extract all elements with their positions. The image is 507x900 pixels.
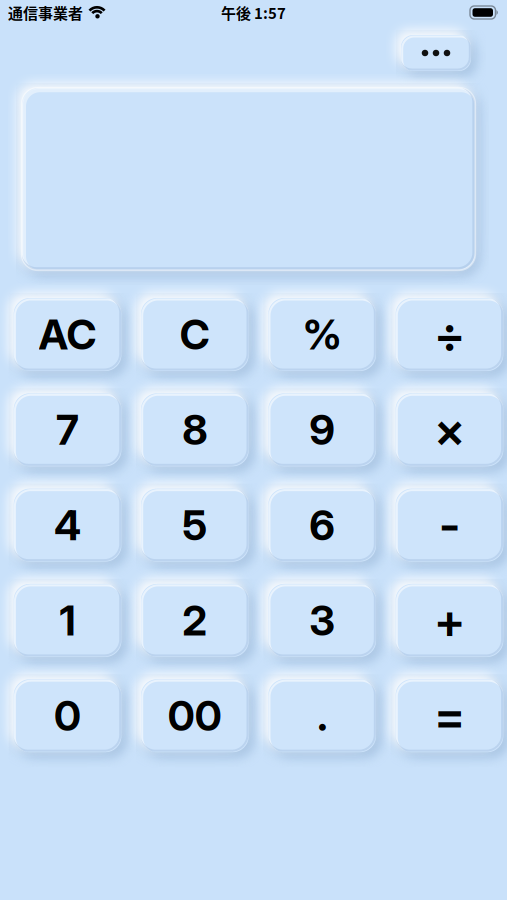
staticText: 9 (309, 405, 335, 454)
button[interactable]: 2 (141, 584, 249, 657)
button[interactable]: 1 (14, 584, 121, 657)
staticText: 00 (168, 691, 222, 740)
button[interactable]: 7 (14, 393, 121, 466)
button[interactable]: More (401, 35, 471, 71)
button[interactable]: 3 (268, 584, 376, 657)
staticText: 7 (56, 405, 79, 454)
button[interactable]: % (268, 298, 376, 371)
staticText: - (438, 497, 460, 553)
staticText: C (180, 310, 210, 359)
staticText: = (433, 687, 465, 744)
button[interactable]: 4 (14, 489, 121, 562)
button[interactable]: 5 (141, 489, 249, 562)
staticText: 5 (182, 501, 207, 549)
staticText: × (433, 401, 465, 458)
staticText: 0 (54, 691, 81, 740)
staticText: 6 (309, 501, 335, 549)
staticText: 午後 1:57 (221, 2, 286, 23)
staticText: . (317, 691, 327, 740)
staticText: 4 (54, 501, 81, 549)
button[interactable]: 8 (141, 393, 249, 466)
button[interactable]: C (141, 298, 249, 371)
staticText: 8 (182, 405, 207, 454)
staticText: 3 (309, 596, 335, 645)
staticText: 通信事業者 (8, 2, 83, 23)
button[interactable]: 00 (141, 679, 249, 752)
button[interactable]: + (396, 584, 503, 657)
staticText: 2 (182, 596, 207, 645)
staticText: % (303, 310, 342, 359)
button[interactable]: × (396, 393, 503, 466)
button[interactable]: = (396, 679, 503, 752)
staticText: + (433, 592, 465, 649)
button[interactable]: ÷ (396, 298, 503, 371)
button[interactable]: . (268, 679, 376, 752)
staticText: ÷ (433, 306, 465, 363)
button[interactable]: 0 (14, 679, 121, 752)
button[interactable]: - (396, 489, 503, 562)
button[interactable]: 6 (268, 489, 376, 562)
staticText: AC (38, 310, 96, 359)
staticText: 1 (59, 596, 75, 645)
button[interactable]: AC (14, 298, 121, 371)
button[interactable]: 9 (268, 393, 376, 466)
